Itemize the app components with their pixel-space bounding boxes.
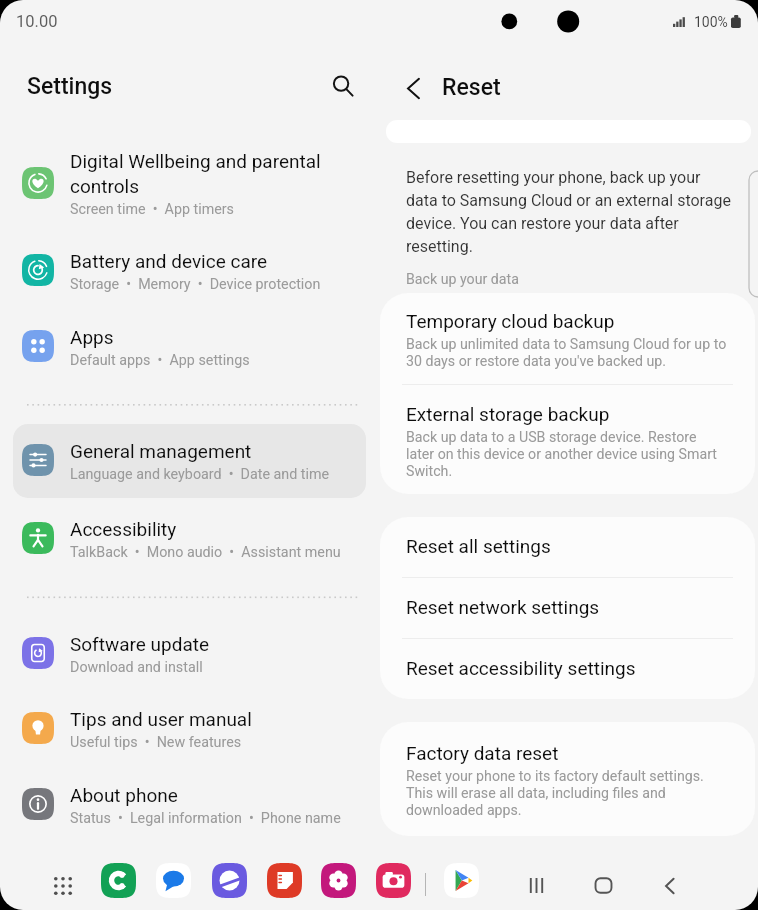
button[interactable]: Factory data reset	[380, 722, 755, 836]
staticText: About phone	[70, 784, 178, 806]
staticText: Reset	[442, 74, 501, 101]
button[interactable]: Phone	[101, 863, 136, 898]
button[interactable]: Home	[582, 864, 625, 907]
staticText: Tips and user manual	[70, 708, 252, 730]
staticText: Accessibility	[70, 518, 177, 540]
button[interactable]: Reset all settings	[380, 517, 755, 578]
staticText: TalkBack • Mono audio • Assistant menu	[70, 544, 341, 561]
staticText: External storage backup	[406, 403, 610, 425]
staticText: Screen time • App timers	[70, 201, 234, 218]
staticText: Reset your phone to its factory default …	[406, 768, 727, 819]
staticText: 10.00	[16, 12, 58, 31]
button[interactable]: Play Store	[444, 863, 479, 898]
staticText: Download and install	[70, 659, 203, 676]
button[interactable]: Recents	[515, 864, 558, 907]
button[interactable]: Reset accessibility settings	[380, 639, 755, 699]
button[interactable]: Reset network settings	[380, 578, 755, 639]
button[interactable]: Camera	[376, 863, 411, 898]
button[interactable]: Apps	[13, 310, 366, 384]
button[interactable]: About phone	[13, 768, 366, 842]
button[interactable]: Tips and user manual	[13, 692, 366, 768]
button[interactable]: Search	[322, 65, 364, 107]
button[interactable]: Gallery	[321, 863, 356, 898]
staticText: Back up data to a USB storage device. Re…	[406, 429, 727, 480]
button[interactable]: All apps	[44, 867, 81, 904]
staticText: Software update	[70, 633, 210, 655]
staticText: Reset all settings	[406, 535, 551, 557]
button[interactable]: Battery and device care	[13, 234, 366, 310]
staticText: Default apps • App settings	[70, 352, 250, 369]
staticText: Factory data reset	[406, 742, 559, 764]
staticText: Before resetting your phone, back up you…	[406, 168, 735, 256]
button[interactable]: External storage backup	[380, 385, 755, 494]
button[interactable]: Back	[648, 864, 691, 907]
staticText: Settings	[27, 73, 113, 100]
staticText: Digital Wellbeing and parental controls	[70, 150, 321, 197]
button[interactable]: Samsung Notes	[267, 863, 302, 898]
staticText: 100%	[694, 14, 728, 30]
button[interactable]: Software update	[13, 617, 366, 692]
staticText: Temporary cloud backup	[406, 310, 615, 332]
staticText: Useful tips • New features	[70, 734, 242, 751]
staticText: Language and keyboard • Date and time	[70, 466, 330, 483]
staticText: Back up your data	[406, 271, 519, 288]
button[interactable]: Digital Wellbeing and parental controls	[13, 134, 366, 234]
staticText: Reset network settings	[406, 596, 600, 618]
staticText: Status • Legal information • Phone name	[70, 810, 341, 827]
staticText: Battery and device care	[70, 250, 268, 272]
button[interactable]: Temporary cloud backup	[380, 293, 755, 385]
staticText: Storage • Memory • Device protection	[70, 276, 321, 293]
button[interactable]: Internet	[212, 863, 247, 898]
staticText: Reset accessibility settings	[406, 657, 636, 679]
button[interactable]: General management	[13, 424, 366, 498]
staticText: General management	[70, 440, 252, 462]
staticText: Apps	[70, 326, 114, 348]
button[interactable]: Accessibility	[13, 502, 366, 576]
button[interactable]: Messages	[156, 863, 191, 898]
staticText: Back up unlimited data to Samsung Cloud …	[406, 336, 727, 370]
button[interactable]: Back	[392, 67, 434, 109]
